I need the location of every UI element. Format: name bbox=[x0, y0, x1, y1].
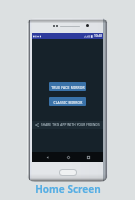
button[interactable]: Back bbox=[42, 152, 52, 162]
button[interactable]: SHARE THIS APP WITH YOUR FRIENDS bbox=[32, 121, 103, 129]
button[interactable]: Home button bbox=[59, 169, 77, 176]
button[interactable]: Recent apps bbox=[83, 152, 93, 162]
staticText: Home Screen bbox=[35, 182, 101, 196]
button[interactable]: TRUE FACE MIRROR bbox=[49, 82, 86, 91]
staticText: 10:48 bbox=[94, 34, 102, 38]
button[interactable]: CLASSIC MIRROR bbox=[49, 97, 86, 106]
staticText: SHARE THIS APP WITH YOUR FRIENDS bbox=[41, 123, 100, 127]
staticText: TRUE FACE MIRROR bbox=[51, 85, 85, 89]
staticText: CLASSIC MIRROR bbox=[53, 100, 83, 104]
button[interactable]: Home bbox=[63, 152, 73, 162]
